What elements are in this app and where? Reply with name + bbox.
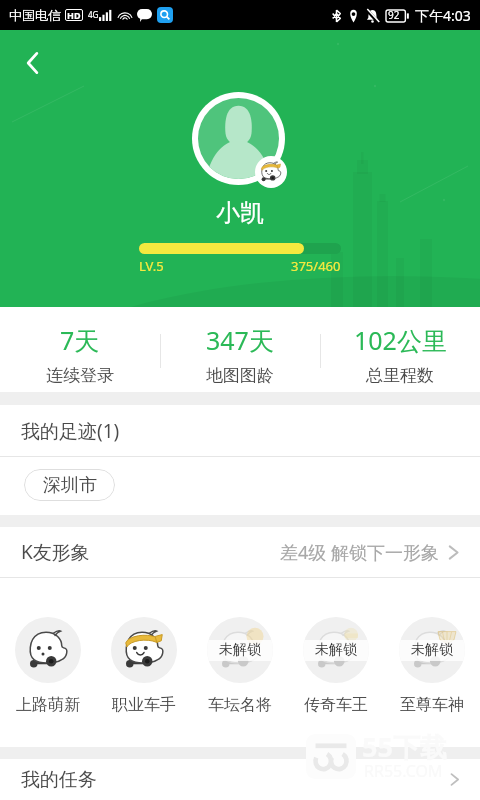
staticText: 347天 [206, 323, 274, 357]
staticText: 总里程数 [366, 365, 434, 386]
staticText: 55下载 [362, 728, 447, 765]
staticText: 未解锁 [219, 641, 261, 659]
button[interactable]: 未解锁 [288, 578, 384, 715]
staticText: 差4级 解锁下一形象 [280, 540, 439, 565]
button[interactable]: 上路萌新 [0, 578, 96, 715]
staticText: 我的足迹(1) [21, 418, 120, 444]
staticText: 4G [88, 9, 99, 20]
staticText: 下午4:03 [415, 6, 471, 25]
staticText: 未解锁 [315, 641, 357, 659]
staticText: 车坛名将 [208, 695, 272, 715]
staticText: 小凯 [216, 198, 264, 228]
button[interactable]: 102公里 [320, 307, 480, 386]
button[interactable]: K友形象 [0, 527, 480, 577]
button[interactable]: 7天 [0, 307, 160, 386]
staticText: LV.5 [139, 257, 164, 275]
staticText: 92 [388, 8, 400, 22]
staticText: 连续登录 [46, 365, 114, 386]
button[interactable]: 深圳市 [24, 469, 115, 501]
staticText: 深圳市 [43, 474, 97, 497]
button[interactable]: 职业车手 [96, 578, 192, 715]
staticText: 7天 [60, 323, 100, 357]
staticText: 至尊车神 [400, 695, 464, 715]
button[interactable]: 未解锁 [384, 578, 480, 715]
staticText: 中国电信 [9, 7, 61, 23]
staticText: 传奇车王 [304, 695, 368, 715]
staticText: K友形象 [21, 539, 90, 565]
button[interactable]: Back [12, 42, 54, 84]
staticText: 上路萌新 [16, 695, 80, 715]
button[interactable]: 我的任务 [0, 759, 480, 800]
button[interactable]: 未解锁 [192, 578, 288, 715]
button[interactable]: 347天 [160, 307, 320, 386]
staticText: 我的任务 [21, 768, 97, 792]
staticText: HD [67, 9, 81, 21]
staticText: 职业车手 [112, 695, 176, 715]
staticText: 地图图龄 [206, 365, 274, 386]
staticText: 375/460 [291, 257, 341, 275]
staticText: 102公里 [354, 323, 447, 357]
staticText: 未解锁 [411, 641, 453, 659]
